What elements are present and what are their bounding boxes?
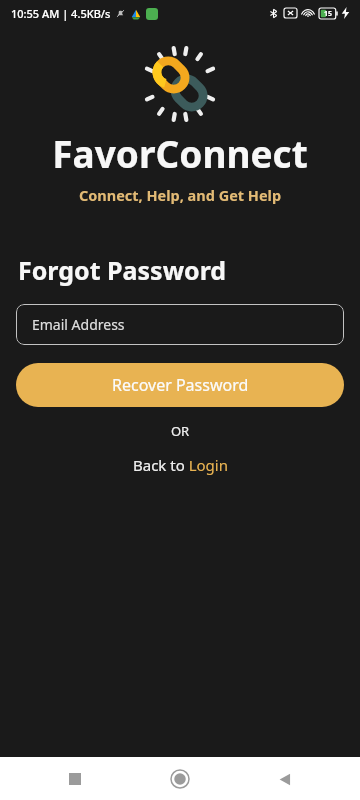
- staticText: 15: [324, 9, 333, 19]
- button[interactable]: Home: [161, 760, 199, 798]
- staticText: 10:55 AM | 4.5KB/s: [11, 6, 111, 21]
- button[interactable]: Email Address: [16, 304, 344, 345]
- staticText: Email Address: [32, 315, 125, 334]
- staticText: Connect, Help, and Get Help: [0, 185, 360, 205]
- staticText: Forgot Password: [18, 253, 227, 287]
- staticText: Back to Login: [133, 455, 228, 475]
- staticText: Recover Password: [112, 374, 249, 396]
- button[interactable]: Back: [266, 760, 304, 798]
- button[interactable]: Back to Login: [127, 452, 234, 478]
- staticText: OR: [0, 422, 360, 440]
- staticText: FavorConnect: [0, 128, 360, 178]
- button[interactable]: Recents: [56, 760, 94, 798]
- button[interactable]: Recover Password: [16, 363, 344, 407]
